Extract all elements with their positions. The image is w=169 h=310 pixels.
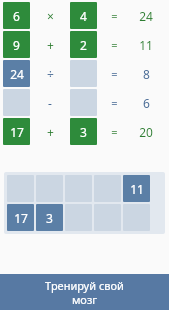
button[interactable]: 3 [36, 204, 63, 231]
staticText: Тренируй свой мозг [45, 278, 124, 307]
staticText: = [111, 66, 118, 81]
button[interactable]: 2 [70, 31, 97, 58]
staticText: 24 [139, 8, 153, 24]
button[interactable]: Тренируй свой мозг [0, 274, 169, 310]
staticText: 6 [13, 8, 20, 24]
staticText: × [47, 8, 54, 24]
button[interactable]: 11 [123, 175, 150, 202]
staticText: 2 [80, 37, 87, 53]
staticText: 8 [143, 66, 150, 82]
staticText: = [111, 95, 118, 110]
staticText: 17 [14, 210, 28, 226]
staticText: 20 [139, 124, 153, 140]
staticText: 17 [10, 124, 24, 140]
staticText: 11 [139, 37, 153, 53]
staticText: 9 [13, 37, 20, 53]
staticText: 4 [80, 8, 87, 24]
staticText: ÷ [47, 66, 54, 82]
button[interactable]: 24 [3, 60, 30, 87]
staticText: - [48, 95, 52, 111]
button[interactable]: 6 [3, 2, 30, 29]
staticText: 6 [143, 95, 150, 111]
button[interactable]: 17 [3, 118, 30, 145]
staticText: 11 [130, 181, 144, 197]
button[interactable]: 3 [70, 118, 97, 145]
staticText: 3 [80, 124, 87, 140]
staticText: = [111, 8, 118, 23]
button[interactable]: 9 [3, 31, 30, 58]
button[interactable]: 4 [70, 2, 97, 29]
staticText: = [111, 37, 118, 52]
staticText: = [111, 124, 118, 139]
staticText: 3 [46, 210, 53, 226]
staticText: + [47, 37, 54, 53]
button[interactable]: 17 [7, 204, 34, 231]
staticText: + [47, 124, 54, 140]
staticText: 24 [10, 66, 24, 82]
